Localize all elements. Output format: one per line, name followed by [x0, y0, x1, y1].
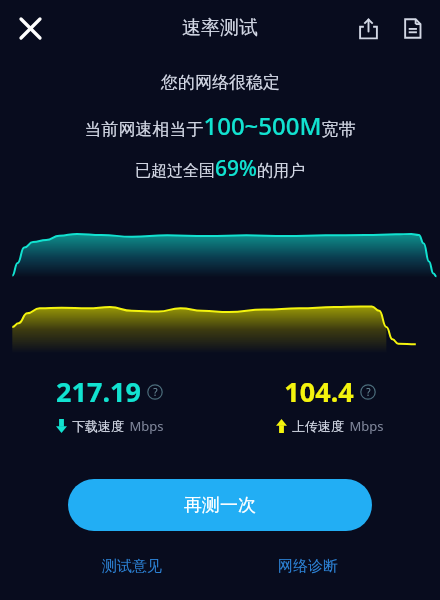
staticText: ?: [366, 385, 371, 399]
staticText: 测试意见: [102, 557, 162, 576]
staticText: 速率测试: [182, 16, 258, 40]
staticText: Mbps: [129, 417, 164, 435]
staticText: Mbps: [349, 417, 384, 435]
staticText: 上传速度: [292, 418, 344, 434]
staticText: 104.4: [284, 373, 354, 410]
button[interactable]: Help: [146, 383, 164, 401]
staticText: 217.19: [56, 373, 141, 410]
button[interactable]: Close: [8, 6, 52, 50]
staticText: 再测一次: [184, 494, 256, 517]
button[interactable]: 测试意见: [102, 557, 162, 576]
staticText: 当前网速相当于100~500M宽带: [84, 109, 356, 142]
staticText: ?: [153, 385, 158, 399]
button[interactable]: 网络诊断: [278, 557, 338, 576]
button[interactable]: Help: [359, 383, 377, 401]
staticText: 您的网络很稳定: [161, 72, 280, 93]
staticText: 已超过全国69%的用户: [135, 154, 305, 183]
staticText: 网络诊断: [278, 557, 338, 576]
button[interactable]: Report: [390, 6, 434, 50]
staticText: 下载速度: [72, 418, 124, 434]
button[interactable]: 再测一次: [68, 479, 372, 531]
button[interactable]: Share: [346, 6, 390, 50]
